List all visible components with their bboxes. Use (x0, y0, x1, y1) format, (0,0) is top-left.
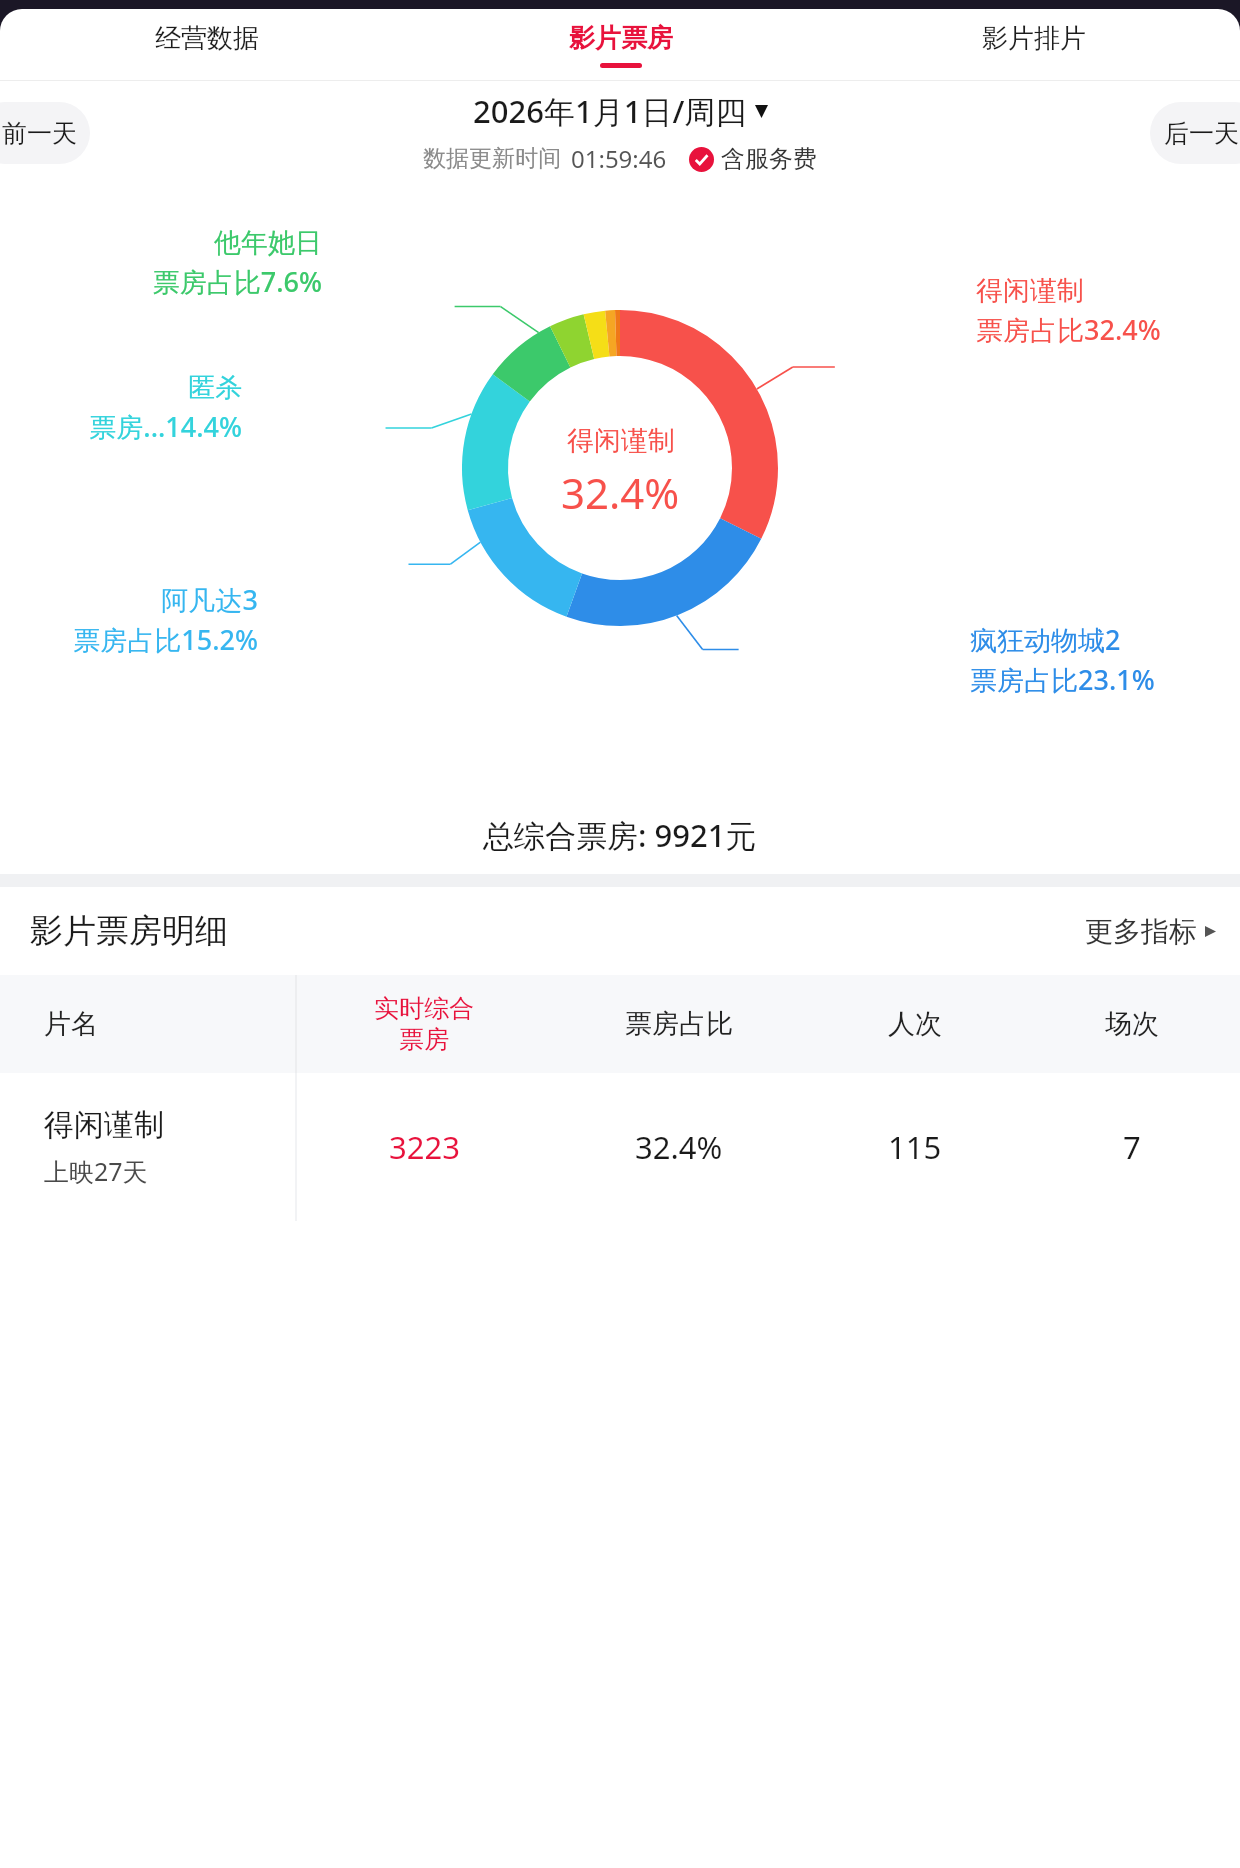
button[interactable]: 含服务费 (689, 144, 817, 174)
staticText: 疯狂动物城2 (970, 621, 1121, 658)
staticText: 片名 (44, 1007, 98, 1041)
staticText: 115 (888, 1126, 942, 1168)
staticText: 经营数据 (155, 22, 259, 55)
staticText: 票房占比 (625, 1007, 733, 1041)
button[interactable]: 前一天 (0, 102, 90, 164)
staticText: 票房占比15.2% (73, 621, 258, 658)
button[interactable]: 更多指标 (1085, 914, 1216, 949)
staticText: 更多指标 (1085, 914, 1197, 949)
button[interactable]: 后一天 (1150, 102, 1240, 164)
button[interactable]: 影片票房 (414, 9, 827, 80)
button[interactable]: 2026年1月1日/周四 (473, 90, 768, 132)
staticText: 影片排片 (982, 22, 1086, 55)
staticText: 得闲谨制 (567, 424, 675, 458)
staticText: 他年她日 (214, 226, 322, 260)
staticText: 得闲谨制 (976, 274, 1084, 308)
staticText: 票房占比7.6% (152, 263, 322, 300)
staticText: 实时综合 (374, 993, 474, 1024)
staticText: 票房占比23.1% (970, 661, 1155, 698)
button[interactable]: 经营数据 (0, 9, 414, 80)
staticText: 得闲谨制 (44, 1106, 164, 1144)
staticText: 票房 (399, 1024, 449, 1055)
other: 含服务费 (689, 147, 714, 172)
staticText: 32.4% (561, 464, 680, 521)
staticText: 前一天 (2, 118, 77, 149)
staticText: 32.4% (635, 1126, 723, 1168)
staticText: 3223 (389, 1126, 460, 1168)
staticText: 数据更新时间 (423, 144, 561, 173)
staticText: 7 (1123, 1126, 1141, 1168)
staticText: 总综合票房: 9921元 (483, 814, 757, 856)
staticText: 票房占比32.4% (976, 311, 1161, 348)
staticText: 后一天 (1164, 118, 1239, 149)
staticText: 阿凡达3 (161, 581, 258, 618)
staticText: 票房...14.4% (89, 408, 242, 445)
button[interactable]: 得闲谨制 (0, 1073, 1240, 1221)
staticText: 含服务费 (721, 144, 817, 174)
staticText: 人次 (888, 1007, 942, 1041)
staticText: 影片票房明细 (30, 910, 228, 952)
staticText: 匿杀 (188, 371, 242, 405)
button[interactable]: 影片排片 (827, 9, 1240, 80)
staticText: 2026年1月1日/周四 (473, 90, 747, 132)
staticText: 场次 (1105, 1007, 1159, 1041)
staticText: 01:59:46 (571, 142, 667, 175)
staticText: 影片票房 (569, 22, 673, 55)
staticText: 上映27天 (44, 1154, 148, 1188)
